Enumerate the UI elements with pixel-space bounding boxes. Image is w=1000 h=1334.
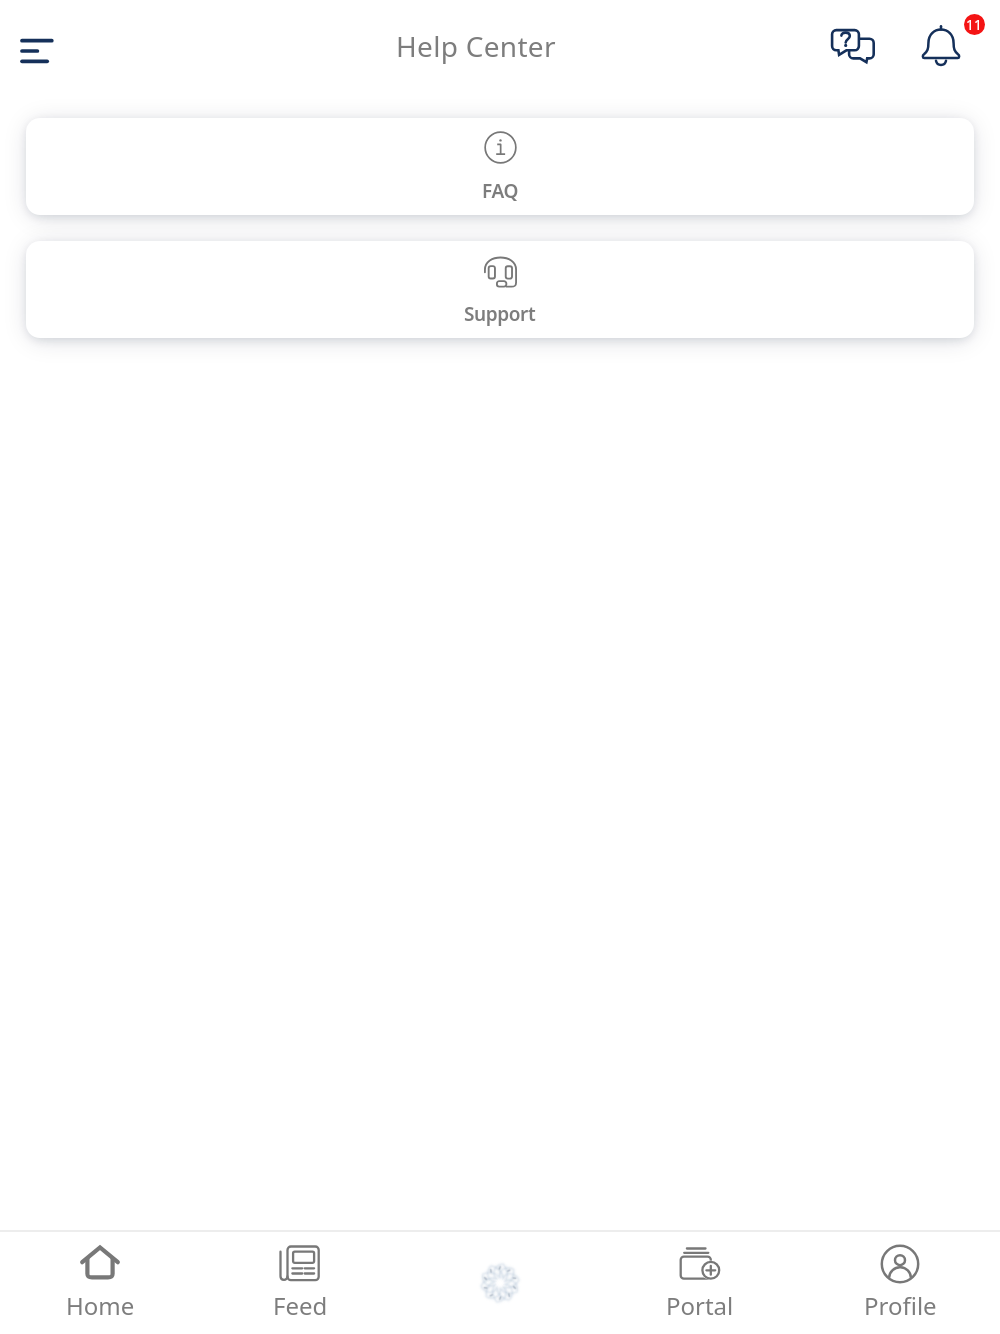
- button[interactable]: Profile: [800, 1232, 1000, 1334]
- staticText: Help Center: [396, 27, 556, 65]
- button[interactable]: Home: [0, 1232, 200, 1334]
- button[interactable]: Notifications, 11 unread: [906, 8, 984, 77]
- staticText: 11: [966, 15, 983, 34]
- staticText: FAQ: [482, 178, 518, 204]
- staticText: Feed: [273, 1289, 328, 1322]
- staticText: Profile: [864, 1289, 937, 1322]
- button[interactable]: Feed: [200, 1232, 400, 1334]
- button[interactable]: Scan: [400, 1232, 600, 1334]
- button[interactable]: Support: [26, 241, 974, 338]
- staticText: Support: [464, 301, 536, 327]
- button[interactable]: Portal: [600, 1232, 800, 1334]
- button[interactable]: Help chat: [824, 17, 884, 77]
- button[interactable]: Open menu: [0, 17, 68, 85]
- button[interactable]: FAQ: [26, 118, 974, 215]
- staticText: Home: [66, 1289, 135, 1322]
- staticText: Portal: [666, 1289, 734, 1322]
